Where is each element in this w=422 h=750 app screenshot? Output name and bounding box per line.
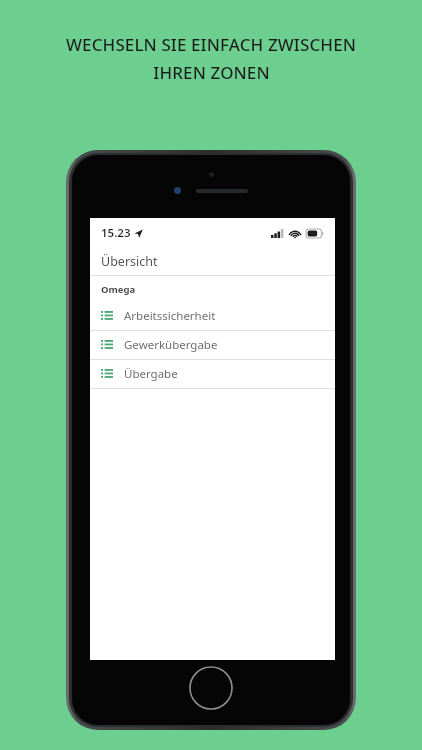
other: Liste: [101, 369, 113, 379]
staticText: Omega: [101, 283, 136, 296]
staticText: Übergabe: [124, 366, 178, 382]
staticText: WECHSELN SIE EINFACH ZWISCHEN: [66, 33, 356, 56]
button[interactable]: Liste: [90, 360, 335, 388]
staticText: 15.23: [101, 225, 131, 241]
other: Liste: [101, 340, 113, 350]
button[interactable]: Liste: [90, 331, 335, 359]
staticText: IHREN ZONEN: [153, 61, 270, 84]
staticText: Arbeitssicherheit: [124, 308, 216, 324]
button[interactable]: Übersicht: [90, 248, 335, 275]
staticText: Übersicht: [101, 253, 158, 270]
staticText: Gewerkübergabe: [124, 337, 218, 353]
other: Liste: [101, 311, 113, 321]
button[interactable]: Liste: [90, 302, 335, 330]
